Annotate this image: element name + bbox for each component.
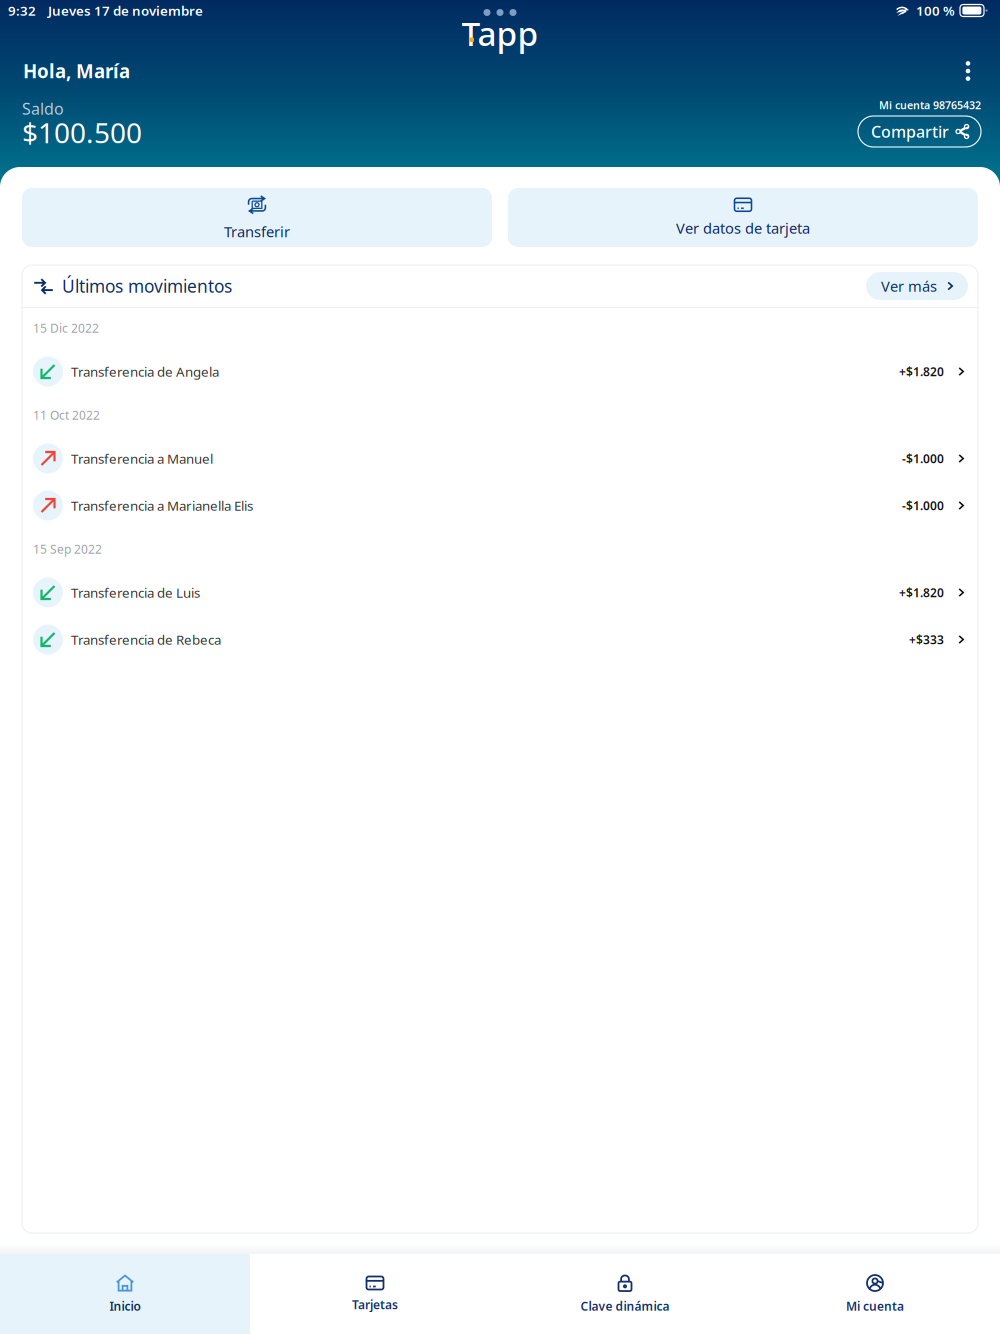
staticText: Transferencia a Marianella Elis: [71, 497, 253, 514]
staticText: Jueves 17 de noviembre: [48, 2, 203, 19]
button[interactable]: Tarjetas: [250, 1254, 500, 1334]
staticText: 15 Dic 2022: [33, 320, 99, 336]
staticText: Transferencia de Rebeca: [71, 631, 221, 648]
staticText: Tarjetas: [352, 1296, 398, 1312]
staticText: Transferir: [224, 222, 290, 241]
staticText: Ver más: [881, 276, 937, 296]
staticText: Inicio: [109, 1298, 140, 1314]
staticText: Últimos movimientos: [62, 274, 232, 297]
staticText: Clave dinámica: [580, 1298, 669, 1314]
staticText: +$1.820: [899, 584, 944, 600]
button[interactable]: Ver datos de tarjeta: [508, 188, 978, 247]
staticText: Saldo: [22, 98, 64, 119]
button[interactable]: Transferencia de Rebeca: [22, 616, 978, 663]
button[interactable]: Clave dinámica: [500, 1254, 750, 1334]
staticText: Compartir: [871, 121, 949, 142]
staticText: +$1.820: [899, 363, 944, 379]
button[interactable]: Transferencia a Marianella Elis: [22, 482, 978, 529]
button[interactable]: Más opciones: [951, 54, 985, 88]
staticText: -$1.000: [902, 450, 944, 466]
button[interactable]: Transferencia de Luis: [22, 569, 978, 616]
button[interactable]: Transferencia a Manuel: [22, 435, 978, 482]
staticText: $100.500: [22, 114, 142, 151]
staticText: 9:32: [8, 2, 36, 19]
staticText: -$1.000: [902, 497, 944, 513]
button[interactable]: Ver más: [866, 272, 968, 300]
staticText: Transferencia de Luis: [71, 584, 200, 601]
staticText: Mi cuenta: [846, 1298, 904, 1314]
button[interactable]: Transferencia de Angela: [22, 348, 978, 395]
staticText: Transferencia de Angela: [71, 363, 219, 380]
staticText: +$333: [909, 631, 944, 647]
staticText: Mi cuenta 98765432: [879, 98, 981, 112]
staticText: 15 Sep 2022: [33, 541, 102, 557]
staticText: Hola, María: [23, 59, 130, 83]
button[interactable]: Mi cuenta: [750, 1254, 1000, 1334]
staticText: Ver datos de tarjeta: [676, 218, 810, 238]
button[interactable]: Compartir: [858, 116, 981, 147]
staticText: Transferencia a Manuel: [71, 450, 213, 467]
staticText: Tapp: [461, 11, 538, 55]
button[interactable]: Inicio: [0, 1254, 250, 1334]
staticText: 100 %: [916, 2, 955, 19]
button[interactable]: Transferir: [22, 188, 492, 247]
staticText: 11 Oct 2022: [33, 407, 100, 423]
